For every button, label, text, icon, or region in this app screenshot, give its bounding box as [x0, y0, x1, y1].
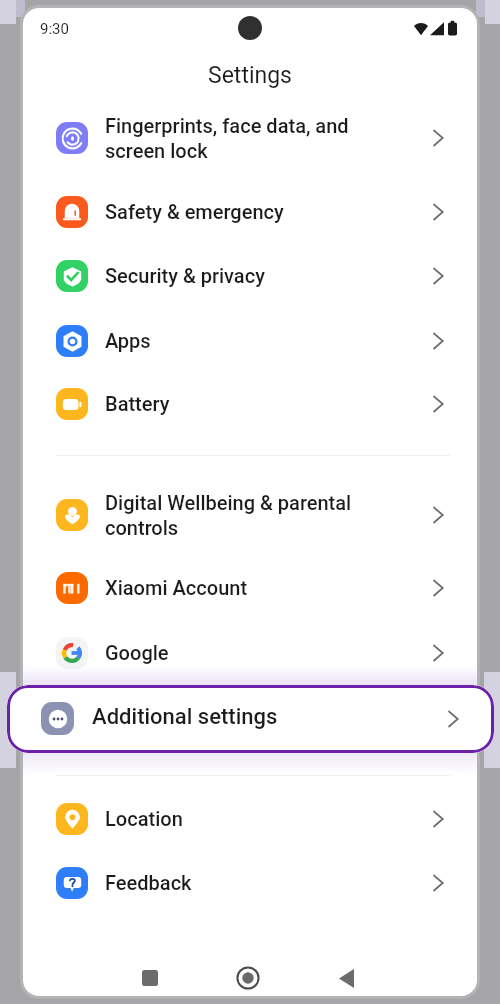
staticText: Additional settings: [92, 704, 278, 730]
staticText: Xiaomi Account: [105, 576, 248, 599]
staticText: Location: [105, 807, 183, 830]
button[interactable]: Feedback: [23, 850, 477, 915]
button[interactable]: Battery: [23, 371, 477, 436]
staticText: Settings: [208, 62, 292, 89]
staticText: Digital Wellbeing & parental controls: [105, 491, 352, 540]
staticText: Fingerprints, face data, and screen lock: [105, 114, 349, 163]
button[interactable]: Fingerprints, face data, and screen lock: [23, 97, 477, 179]
button[interactable]: Recent apps: [128, 956, 172, 996]
button[interactable]: Safety & emergency: [23, 179, 477, 244]
staticText: Security & privacy: [105, 264, 265, 287]
staticText: Feedback: [105, 871, 192, 894]
button[interactable]: Digital Wellbeing & parental controls: [23, 474, 477, 556]
button[interactable]: Xiaomi Account: [23, 555, 477, 620]
button[interactable]: Security & privacy: [23, 243, 477, 308]
staticText: Safety & emergency: [105, 200, 284, 223]
button[interactable]: Additional settings: [7, 685, 494, 753]
button[interactable]: Location: [23, 786, 477, 851]
button[interactable]: Back: [324, 956, 368, 996]
button[interactable]: Google: [23, 620, 477, 685]
button[interactable]: Apps: [23, 308, 477, 373]
staticText: Apps: [105, 329, 151, 352]
staticText: Google: [105, 641, 169, 664]
staticText: Battery: [105, 392, 170, 415]
button[interactable]: Home: [226, 956, 270, 996]
staticText: 9:30: [40, 20, 69, 38]
